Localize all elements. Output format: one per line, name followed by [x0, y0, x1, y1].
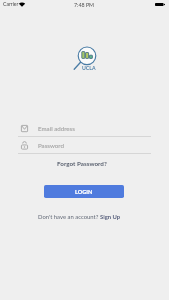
- staticText: Password: [38, 142, 64, 149]
- staticText: LOGIN: [75, 188, 93, 195]
- button[interactable]: Sign Up: [100, 213, 121, 220]
- staticText: UCLA: [82, 65, 96, 71]
- staticText: Don't have an account?: [38, 213, 100, 220]
- button[interactable]: Forgot Password?: [57, 160, 107, 168]
- other: Wi-Fi: [19, 2, 25, 6]
- staticText: Forgot Password?: [57, 160, 107, 168]
- staticText: Email address: [38, 125, 75, 132]
- other: Battery: [155, 3, 165, 6]
- button[interactable]: LOGIN: [44, 185, 124, 198]
- staticText: 7:48 PM: [74, 2, 94, 8]
- staticText: Carrier: [3, 1, 19, 7]
